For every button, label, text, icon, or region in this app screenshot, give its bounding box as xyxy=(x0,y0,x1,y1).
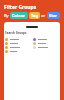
button[interactable] xyxy=(5,45,31,49)
button[interactable]: Colour xyxy=(10,12,28,19)
button[interactable] xyxy=(33,41,59,45)
staticText: Filter Groups xyxy=(4,4,37,11)
button[interactable] xyxy=(5,41,31,45)
button[interactable]: Star xyxy=(47,12,60,19)
button[interactable] xyxy=(5,37,31,41)
button[interactable] xyxy=(5,49,31,53)
button[interactable]: Tag xyxy=(29,12,40,19)
staticText: Colour xyxy=(12,13,26,18)
staticText: Search Groups xyxy=(5,31,27,35)
staticText: Tag xyxy=(31,13,38,18)
staticText: By xyxy=(4,13,9,18)
staticText: or xyxy=(41,13,46,18)
staticText: Star xyxy=(49,13,58,18)
button[interactable] xyxy=(33,37,59,41)
button[interactable] xyxy=(33,45,59,49)
